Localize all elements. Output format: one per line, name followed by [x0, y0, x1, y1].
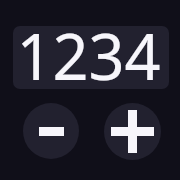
button[interactable]: Decrement: [23, 103, 79, 159]
button[interactable]: 1234: [13, 26, 169, 89]
staticText: 1234: [16, 26, 161, 89]
button[interactable]: Increment: [104, 103, 161, 160]
